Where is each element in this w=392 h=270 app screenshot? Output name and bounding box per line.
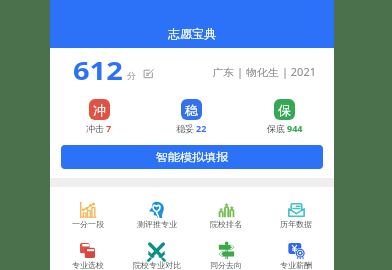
staticText: 分 xyxy=(127,70,136,81)
staticText: 同分去向 xyxy=(210,260,242,270)
button[interactable]: 专业选校 xyxy=(53,228,122,269)
staticText: 一分一段 xyxy=(72,219,104,229)
button[interactable]: 测评推专业 xyxy=(122,187,191,228)
staticText: 保底 xyxy=(267,123,285,134)
staticText: 广东 | 物化生 | 2021 xyxy=(212,65,317,79)
staticText: 专业选校 xyxy=(72,260,104,270)
staticText: 冲击 xyxy=(86,123,104,134)
button[interactable]: 保 xyxy=(238,96,331,134)
staticText: 保 xyxy=(278,102,291,118)
staticText: 历年数据 xyxy=(280,219,312,229)
staticText: 612 xyxy=(73,52,123,86)
staticText: 稳妥 xyxy=(176,123,194,134)
staticText: 测评推专业 xyxy=(137,219,177,229)
staticText: 944 xyxy=(287,122,303,134)
button[interactable]: 专业薪酬 xyxy=(261,228,331,269)
button[interactable]: 稳 xyxy=(145,96,238,134)
button[interactable]: 智能模拟填报 xyxy=(61,145,323,169)
staticText: 志愿宝典 xyxy=(168,26,216,41)
button[interactable]: 院校排名 xyxy=(191,187,261,228)
button[interactable]: 院校专业对比 xyxy=(122,228,191,269)
staticText: 院校排名 xyxy=(210,219,242,229)
button[interactable]: 历年数据 xyxy=(261,187,331,228)
staticText: 专业薪酬 xyxy=(280,260,312,270)
staticText: 院校专业对比 xyxy=(133,260,181,270)
button[interactable]: 冲 xyxy=(53,96,145,134)
button[interactable]: 同分去向 xyxy=(191,228,261,269)
staticText: 22 xyxy=(196,122,207,134)
staticText: 冲 xyxy=(93,102,106,118)
staticText: 7 xyxy=(106,122,112,134)
button[interactable]: 编辑分数 xyxy=(143,68,154,79)
staticText: 稳 xyxy=(185,102,198,118)
button[interactable]: 一分一段 xyxy=(53,187,122,228)
staticText: 智能模拟填报 xyxy=(156,150,228,164)
